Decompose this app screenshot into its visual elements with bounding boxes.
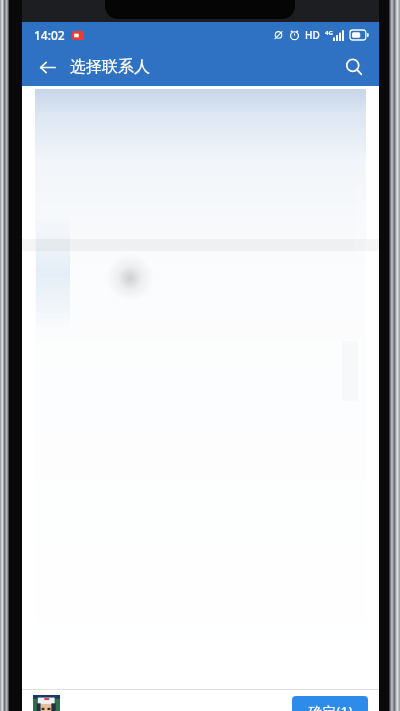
- staticText: 选择联系人: [70, 57, 150, 77]
- staticText: 14:02: [34, 27, 65, 43]
- button[interactable]: Selected contact: [33, 695, 60, 711]
- staticText: 确定(1): [308, 702, 353, 711]
- button[interactable]: Search: [338, 51, 370, 83]
- button[interactable]: Back: [32, 52, 62, 82]
- button[interactable]: 确定(1): [292, 696, 368, 711]
- staticText: HD: [305, 28, 320, 42]
- staticText: 4G: [325, 29, 333, 37]
